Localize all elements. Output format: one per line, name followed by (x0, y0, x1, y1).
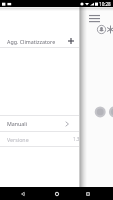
button[interactable]: Account (97, 25, 106, 34)
button[interactable]: Home (45, 187, 68, 200)
button[interactable]: Climate settings (106, 25, 113, 34)
button[interactable]: Manuali (0, 116, 79, 131)
staticText: Agg. Climatizzatore (7, 38, 56, 45)
staticText: Versione (7, 136, 29, 143)
button[interactable]: Recent apps (76, 187, 99, 200)
button[interactable]: Open navigation menu (89, 14, 100, 22)
staticText: 10:28 (99, 1, 111, 7)
button[interactable]: Agg. Climatizzatore (0, 35, 79, 47)
button[interactable]: Back (11, 187, 34, 200)
staticText: Manuali (7, 120, 28, 127)
staticText: 1.3 (73, 136, 80, 142)
